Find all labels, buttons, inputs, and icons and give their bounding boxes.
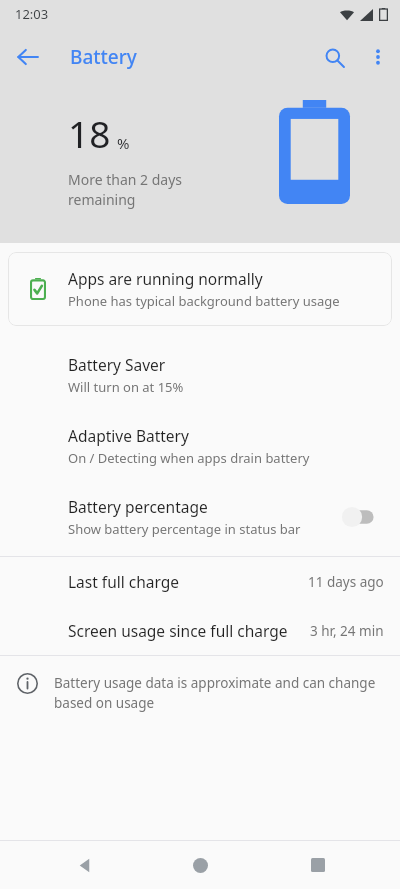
staticText: Battery bbox=[70, 44, 137, 70]
staticText: More than 2 days remaining bbox=[68, 170, 183, 209]
staticText: Battery percentage bbox=[68, 496, 208, 517]
staticText: Adaptive Battery bbox=[68, 425, 189, 446]
button[interactable]: Recent apps bbox=[294, 841, 342, 889]
button[interactable]: Search bbox=[312, 35, 356, 79]
button[interactable]: Battery percentage toggle bbox=[340, 506, 380, 528]
button[interactable]: Back bbox=[8, 37, 48, 77]
button[interactable]: More options bbox=[356, 35, 400, 79]
button[interactable]: Back bbox=[61, 841, 109, 889]
staticText: Apps are running normally bbox=[68, 268, 263, 289]
staticText: On / Detecting when apps drain battery bbox=[68, 449, 310, 467]
staticText: Last full charge bbox=[68, 571, 300, 592]
button[interactable]: Screen usage since full charge bbox=[0, 606, 400, 655]
staticText: Battery usage data is approximate and ca… bbox=[54, 674, 376, 712]
button[interactable]: Battery Saver bbox=[0, 339, 400, 410]
staticText: Phone has typical background battery usa… bbox=[68, 292, 340, 310]
staticText: Will turn on at 15% bbox=[68, 378, 184, 396]
button[interactable]: Adaptive Battery bbox=[0, 410, 400, 481]
button[interactable]: Apps are running normally bbox=[8, 252, 392, 326]
staticText: 18 bbox=[68, 108, 111, 158]
button[interactable]: Battery percentage bbox=[0, 481, 400, 552]
button[interactable]: Home bbox=[176, 841, 224, 889]
staticText: 3 hr, 24 min bbox=[310, 622, 384, 640]
staticText: 11 days ago bbox=[308, 573, 384, 591]
staticText: Show battery percentage in status bar bbox=[68, 520, 301, 538]
button[interactable]: Last full charge bbox=[0, 557, 400, 606]
staticText: 12:03 bbox=[15, 5, 49, 23]
staticText: Screen usage since full charge bbox=[68, 620, 302, 641]
staticText: Battery Saver bbox=[68, 354, 166, 375]
staticText: % bbox=[117, 133, 130, 153]
